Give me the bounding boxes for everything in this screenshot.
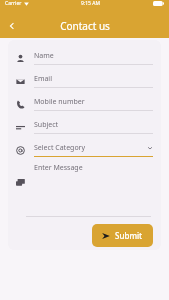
staticText: Subject	[34, 120, 153, 130]
staticText: Carrier	[5, 0, 22, 7]
button[interactable]: Email	[16, 74, 153, 88]
staticText: Email	[34, 74, 153, 84]
staticText: Contact us	[60, 19, 110, 33]
button[interactable]: Submit	[92, 224, 153, 247]
staticText: Mobile number	[34, 97, 153, 107]
button[interactable]: Select Category	[16, 143, 153, 157]
button[interactable]: Enter Message	[16, 163, 153, 217]
button[interactable]: Mobile number	[16, 97, 153, 111]
button[interactable]: Name	[16, 51, 153, 65]
staticText: Submit	[115, 230, 143, 241]
button[interactable]: Back	[4, 18, 20, 34]
staticText: Enter Message	[34, 163, 83, 173]
staticText: Select Category	[34, 143, 147, 153]
button[interactable]: Subject	[16, 120, 153, 134]
staticText: 9:15 AM	[81, 0, 100, 7]
staticText: Name	[34, 51, 153, 61]
